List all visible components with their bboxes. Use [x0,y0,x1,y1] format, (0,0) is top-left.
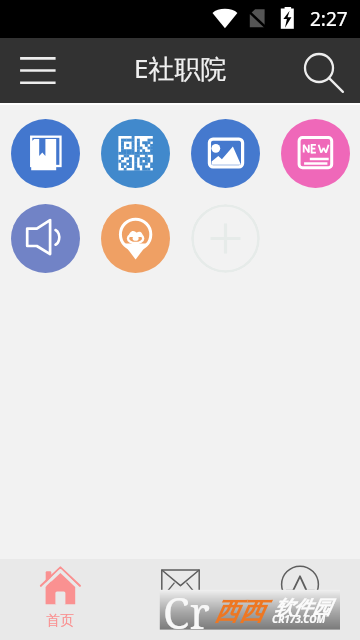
staticText: 消息 [166,612,194,630]
staticText: 2:27 [310,6,348,32]
button[interactable]: 首页 [0,559,120,640]
staticText: 西西 [214,596,264,627]
staticText: E社职院 [134,50,227,86]
button[interactable]: Gallery [191,119,260,188]
staticText: CR173.COM [272,612,326,626]
button[interactable]: 消息 [120,559,240,640]
staticText: 首页 [46,612,74,630]
staticText: Cr [163,583,210,640]
staticText: 应用 [286,612,314,630]
button[interactable]: Search [290,38,360,103]
button[interactable]: Add shortcut [191,204,260,273]
button[interactable]: Library [11,119,80,188]
button[interactable]: Scan QR code [101,119,170,188]
button[interactable]: Open navigation menu [0,38,76,103]
button[interactable]: Campus map [101,204,170,273]
button[interactable]: Broadcast [11,204,80,273]
button[interactable]: News [281,119,350,188]
button[interactable]: 应用 [240,559,360,640]
staticText: 软件园 [274,596,331,620]
